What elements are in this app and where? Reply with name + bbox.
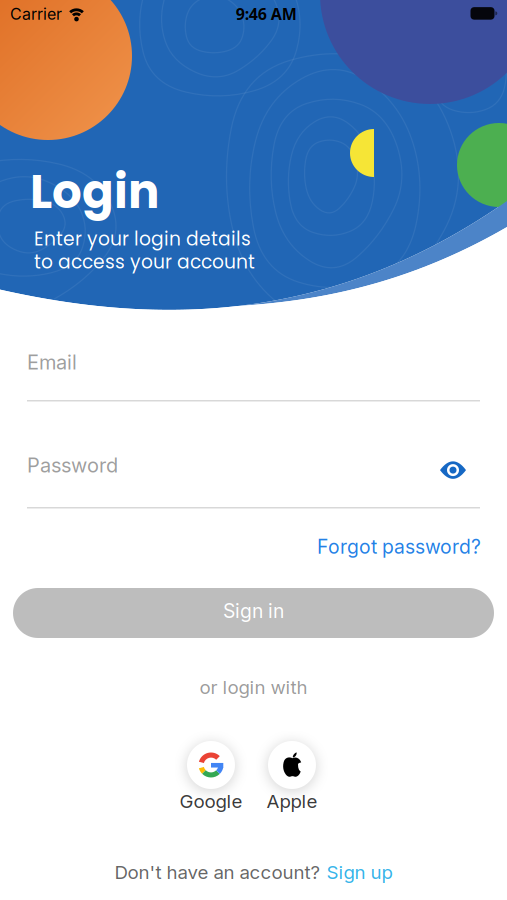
staticText: Password — [27, 453, 118, 477]
staticText: Don't have an account? — [114, 861, 320, 884]
button[interactable]: Apple — [252, 741, 332, 813]
button[interactable]: Email — [27, 350, 480, 401]
staticText: Carrier — [10, 4, 62, 24]
staticText: or login with — [199, 676, 307, 699]
staticText: Enter your login details — [34, 226, 251, 252]
staticText: Sign up — [326, 861, 392, 884]
button[interactable]: Google — [171, 741, 251, 813]
staticText: Sign in — [223, 599, 284, 623]
staticText: Email — [27, 350, 77, 374]
button[interactable]: Password — [27, 453, 480, 508]
staticText: Apple — [266, 790, 317, 813]
staticText: Forgot password? — [317, 535, 481, 558]
button[interactable]: Sign up — [326, 861, 392, 884]
staticText: to access your account — [34, 249, 255, 275]
button[interactable]: Sign in — [13, 588, 494, 638]
staticText: Google — [179, 790, 242, 813]
button[interactable]: Forgot password? — [317, 535, 481, 558]
button[interactable]: Show password — [440, 456, 466, 474]
staticText: Login — [30, 159, 159, 224]
staticText: 9:46 AM — [236, 3, 297, 25]
